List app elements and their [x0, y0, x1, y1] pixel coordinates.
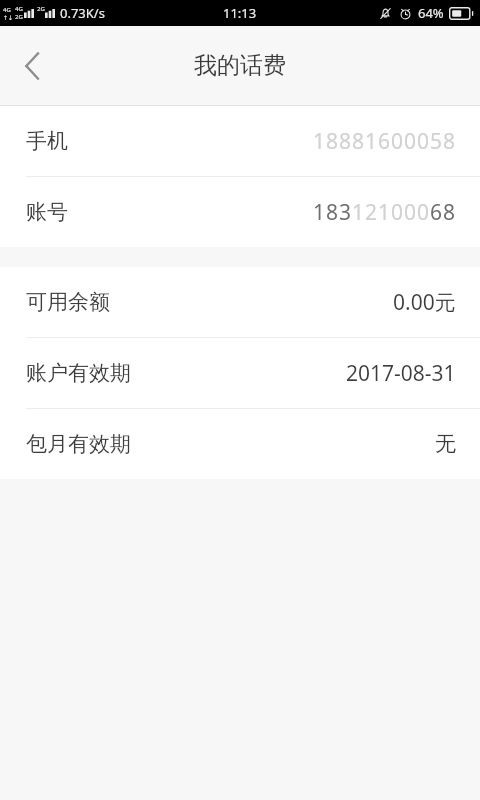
staticText: 账号: [26, 199, 68, 225]
staticText: 0.00元: [393, 288, 456, 317]
staticText: 1: [352, 198, 365, 227]
staticText: 6: [378, 127, 391, 156]
staticText: 包月有效期: [26, 431, 131, 457]
staticText: 0: [404, 198, 417, 227]
staticText: 1: [365, 127, 378, 156]
button[interactable]: 可用余额: [0, 267, 480, 337]
staticText: 6: [430, 198, 443, 227]
staticText: 2017-08-31: [346, 359, 456, 388]
staticText: ↑↓: [3, 14, 14, 21]
staticText: 64%: [418, 4, 444, 22]
staticText: 我的话费: [194, 51, 286, 80]
staticText: 可用余额: [26, 289, 110, 315]
staticText: 0: [417, 198, 430, 227]
staticText: 4G: [3, 6, 11, 14]
button[interactable]: 包月有效期: [0, 409, 480, 479]
staticText: 8: [443, 198, 456, 227]
staticText: 1: [378, 198, 391, 227]
staticText: 8: [339, 127, 352, 156]
staticText: 8: [326, 127, 339, 156]
staticText: 2: [365, 198, 378, 227]
staticText: 手机: [26, 128, 68, 154]
staticText: 0.73K/s: [60, 4, 105, 22]
staticText: 11:13: [223, 4, 257, 22]
staticText: 1: [313, 127, 326, 156]
staticText: 8: [443, 127, 456, 156]
staticText: 2G: [15, 13, 23, 21]
staticText: 3: [339, 198, 352, 227]
staticText: 0: [391, 198, 404, 227]
staticText: 0: [391, 127, 404, 156]
staticText: 账户有效期: [26, 360, 131, 386]
staticText: 2G: [37, 5, 45, 13]
button[interactable]: 手机: [0, 106, 480, 176]
button[interactable]: Back: [0, 34, 64, 98]
staticText: 0: [404, 127, 417, 156]
button[interactable]: 账户有效期: [0, 338, 480, 408]
staticText: 8: [352, 127, 365, 156]
staticText: 0: [417, 127, 430, 156]
staticText: 1: [313, 198, 326, 227]
staticText: 5: [430, 127, 443, 156]
staticText: 4G: [15, 5, 23, 13]
button[interactable]: 账号: [0, 177, 480, 247]
staticText: 无: [435, 431, 456, 457]
staticText: 8: [326, 198, 339, 227]
